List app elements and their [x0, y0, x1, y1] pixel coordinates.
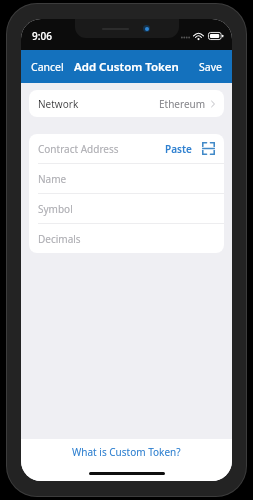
button[interactable]: Symbol — [29, 194, 224, 223]
button[interactable]: Paste — [165, 142, 192, 156]
button[interactable]: Save — [189, 53, 232, 81]
button[interactable]: What is Custom Token? — [21, 439, 232, 465]
staticText: What is Custom Token? — [72, 445, 181, 459]
staticText: Network — [38, 97, 79, 111]
staticText: Paste — [165, 142, 192, 156]
button[interactable]: Scan QR code — [202, 142, 215, 155]
button[interactable]: Name — [29, 164, 224, 193]
button[interactable]: Contract Address — [29, 134, 224, 163]
button[interactable]: Cancel — [21, 53, 74, 81]
staticText: Decimals — [38, 232, 81, 246]
staticText: Symbol — [38, 202, 73, 216]
button[interactable]: Decimals — [29, 224, 224, 253]
button[interactable]: Network — [29, 90, 224, 117]
staticText: 9:06 — [32, 29, 52, 43]
staticText: Contract Address — [38, 142, 119, 156]
staticText: Cancel — [31, 60, 64, 74]
staticText: Ethereum — [159, 97, 206, 111]
staticText: Add Custom Token — [74, 59, 179, 75]
staticText: Save — [199, 60, 222, 74]
staticText: Name — [38, 172, 67, 186]
